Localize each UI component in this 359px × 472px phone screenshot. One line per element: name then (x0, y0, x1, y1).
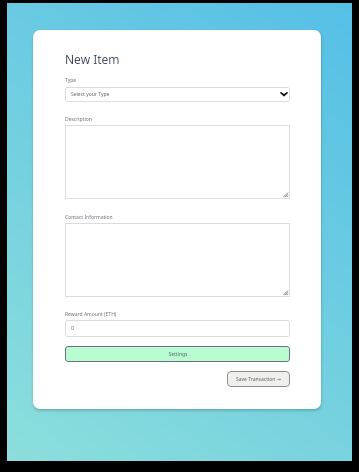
staticText: Contact Information (65, 214, 113, 221)
staticText: 0 (71, 325, 74, 332)
staticText: Description (65, 116, 92, 123)
staticText: New Item (65, 51, 120, 67)
staticText: Save Transaction → (236, 376, 281, 383)
button[interactable]: Select your Type (65, 87, 290, 102)
button[interactable]: Contact information input (65, 223, 290, 297)
staticText: Type (65, 77, 77, 84)
staticText: Settings (168, 351, 188, 358)
staticText: Select your Type (71, 91, 110, 98)
staticText: Reward Amount (ETH) (65, 311, 117, 318)
button[interactable]: Description input (65, 125, 290, 199)
button[interactable]: Save Transaction → (227, 371, 290, 387)
button[interactable]: Settings (65, 346, 290, 362)
button[interactable]: 0 (65, 320, 290, 337)
other: Open type dropdown (280, 91, 288, 97)
